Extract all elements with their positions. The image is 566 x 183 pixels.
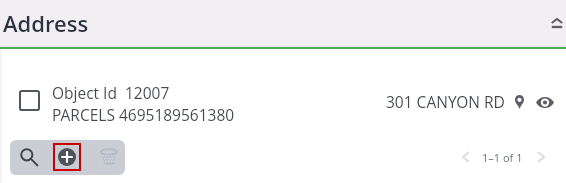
button[interactable]: Locate on map bbox=[509, 92, 529, 112]
button[interactable]: View details bbox=[535, 92, 555, 112]
staticText: Address bbox=[3, 8, 89, 38]
button[interactable]: Add bbox=[48, 140, 86, 175]
staticText: 1–1 of 1 bbox=[482, 150, 523, 165]
button[interactable]: Previous page bbox=[455, 146, 477, 168]
button[interactable]: Next page bbox=[530, 146, 552, 168]
button[interactable]: Delete bbox=[89, 140, 125, 174]
staticText: Object Id 12007 bbox=[52, 82, 170, 103]
staticText: PARCELS 4695189561380 bbox=[52, 104, 235, 125]
button[interactable]: Collapse bbox=[545, 11, 566, 35]
button[interactable]: Search bbox=[11, 140, 48, 174]
staticText: 301 CANYON RD bbox=[386, 91, 505, 112]
button[interactable]: Select row bbox=[19, 90, 40, 111]
